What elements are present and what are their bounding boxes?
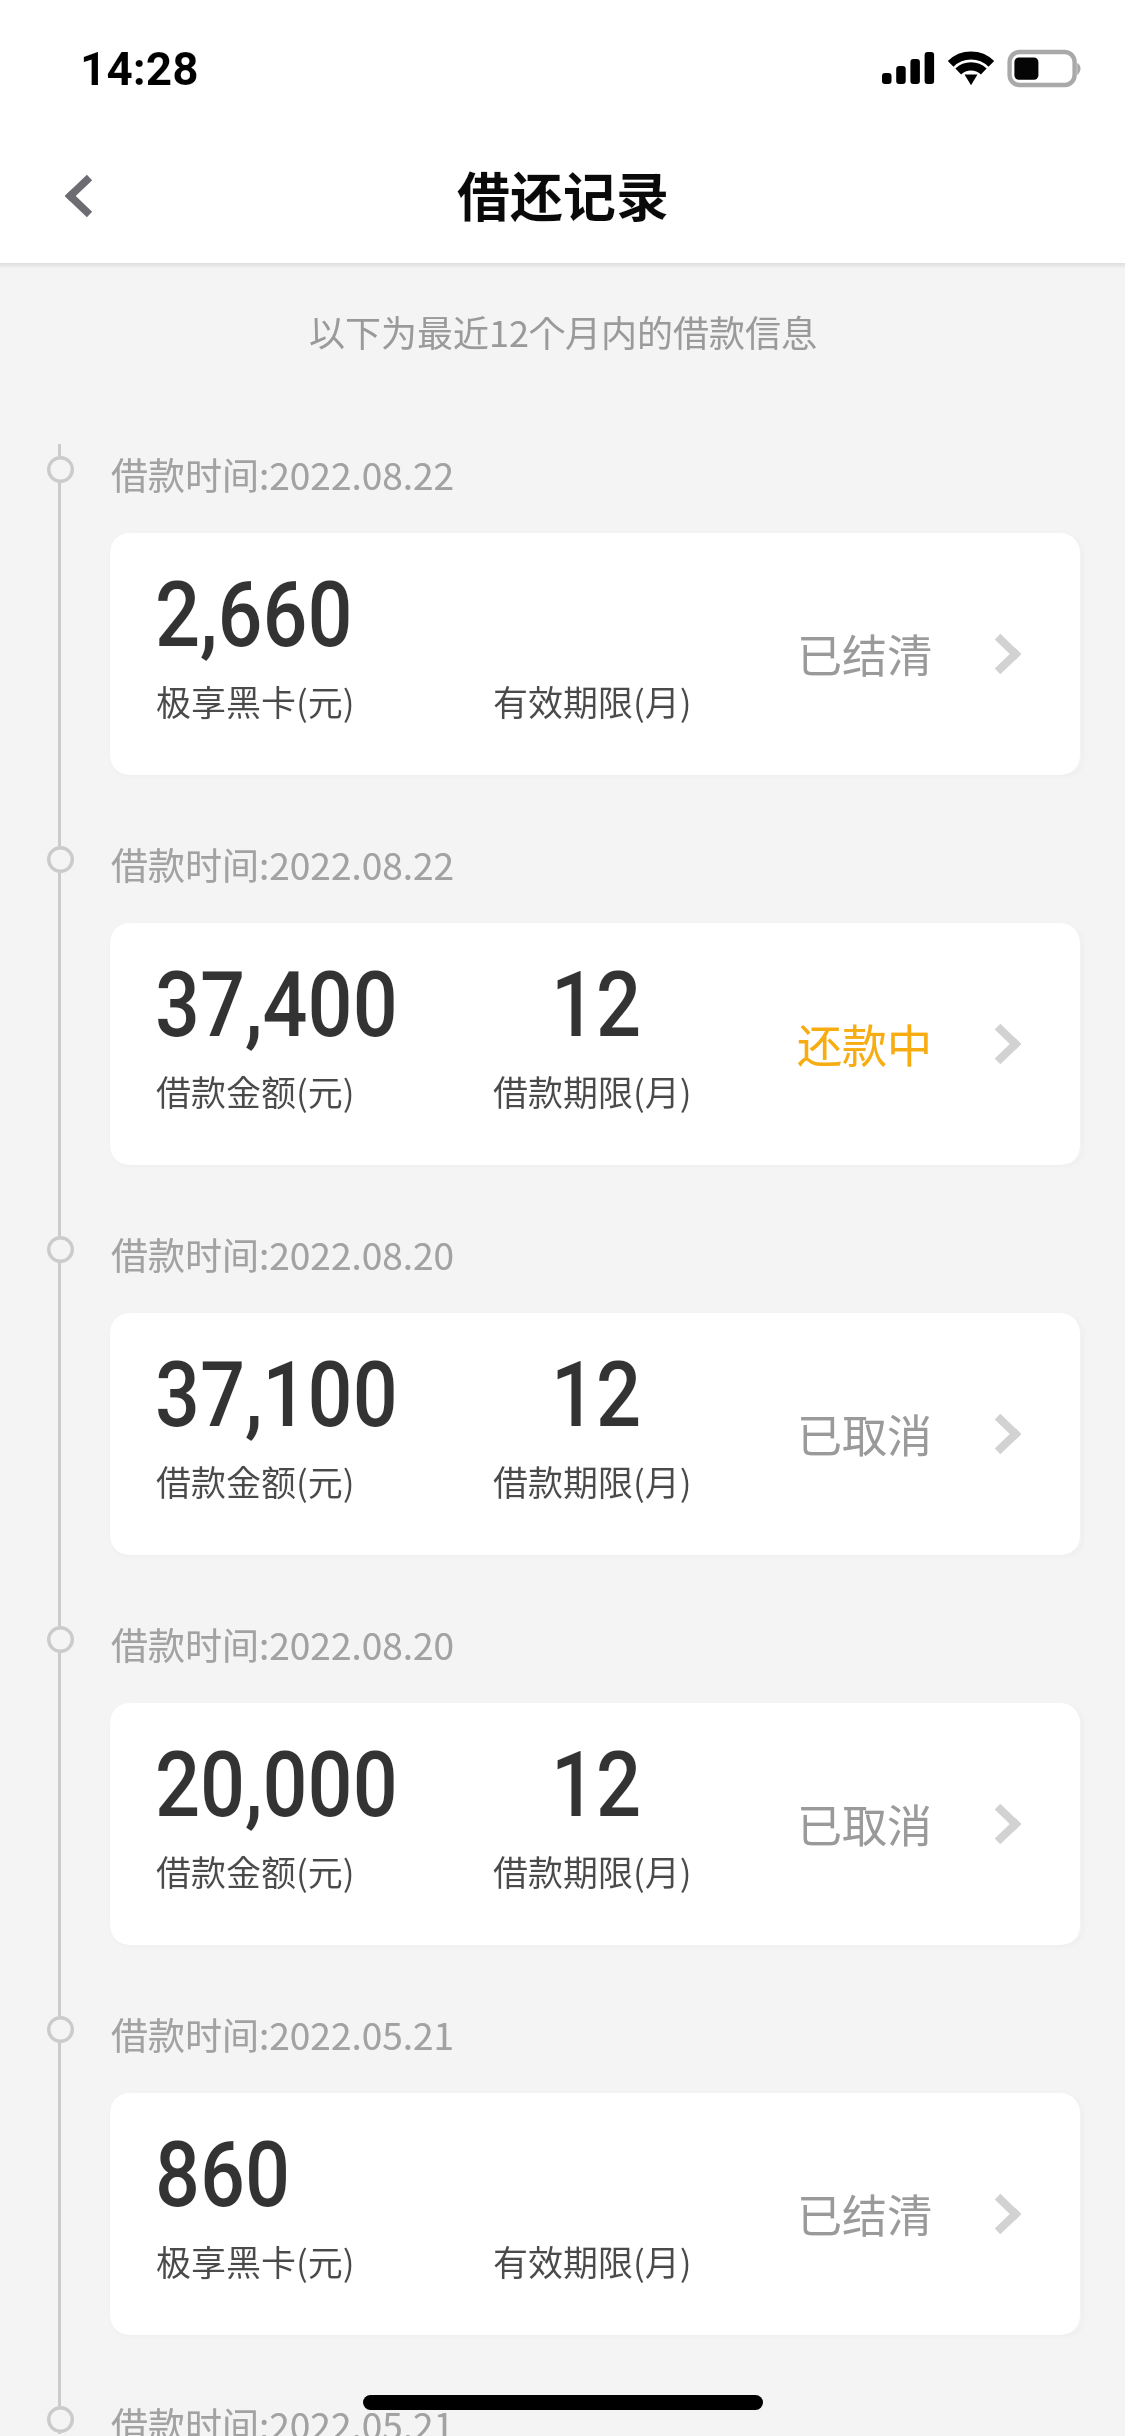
staticText: 借款时间:2022.08.20 <box>111 1227 455 1281</box>
staticText: 借款金额(元) <box>156 1455 355 1506</box>
staticText: 有效期限(月) <box>493 675 692 726</box>
button[interactable]: 37,400 <box>110 923 1080 1165</box>
staticText: 37,400 <box>155 952 398 1059</box>
staticText: 借还记录 <box>457 156 669 233</box>
staticText: 借款时间:2022.08.22 <box>111 447 455 501</box>
staticText: 借款时间:2022.05.21 <box>111 2397 455 2436</box>
staticText: 借款期限(月) <box>493 1845 692 1896</box>
staticText: 借款金额(元) <box>156 1845 355 1896</box>
staticText: 12 <box>508 1732 684 1839</box>
staticText: 借款时间:2022.08.22 <box>111 837 455 891</box>
staticText: 已取消 <box>797 1791 933 1856</box>
staticText: 借款期限(月) <box>493 1065 692 1116</box>
staticText: 极享黑卡(元) <box>156 675 355 726</box>
staticText: 2,660 <box>155 562 353 669</box>
staticText: 已结清 <box>797 2181 933 2246</box>
staticText: 有效期限(月) <box>493 2235 692 2286</box>
staticText: 借款金额(元) <box>156 1065 355 1116</box>
button[interactable]: 2,660 <box>110 533 1080 775</box>
staticText: 借款期限(月) <box>493 1455 692 1506</box>
staticText: 37,100 <box>155 1342 398 1449</box>
staticText: 借款时间:2022.08.20 <box>111 1617 455 1671</box>
button[interactable]: Back <box>30 148 126 244</box>
staticText: 已结清 <box>797 621 933 686</box>
button[interactable]: 20,000 <box>110 1703 1080 1945</box>
button[interactable]: 37,100 <box>110 1313 1080 1555</box>
button[interactable]: 860 <box>110 2093 1080 2335</box>
staticText: 860 <box>155 2122 291 2229</box>
staticText: 还款中 <box>797 1011 933 1076</box>
staticText: 以下为最近12个月内的借款信息 <box>309 305 817 357</box>
staticText: 14:28 <box>80 42 199 96</box>
staticText: 借款时间:2022.05.21 <box>111 2007 455 2061</box>
staticText: 极享黑卡(元) <box>156 2235 355 2286</box>
staticText: 12 <box>508 952 684 1059</box>
staticText: 12 <box>508 1342 684 1449</box>
staticText: 20,000 <box>155 1732 398 1839</box>
staticText: 已取消 <box>797 1401 933 1466</box>
